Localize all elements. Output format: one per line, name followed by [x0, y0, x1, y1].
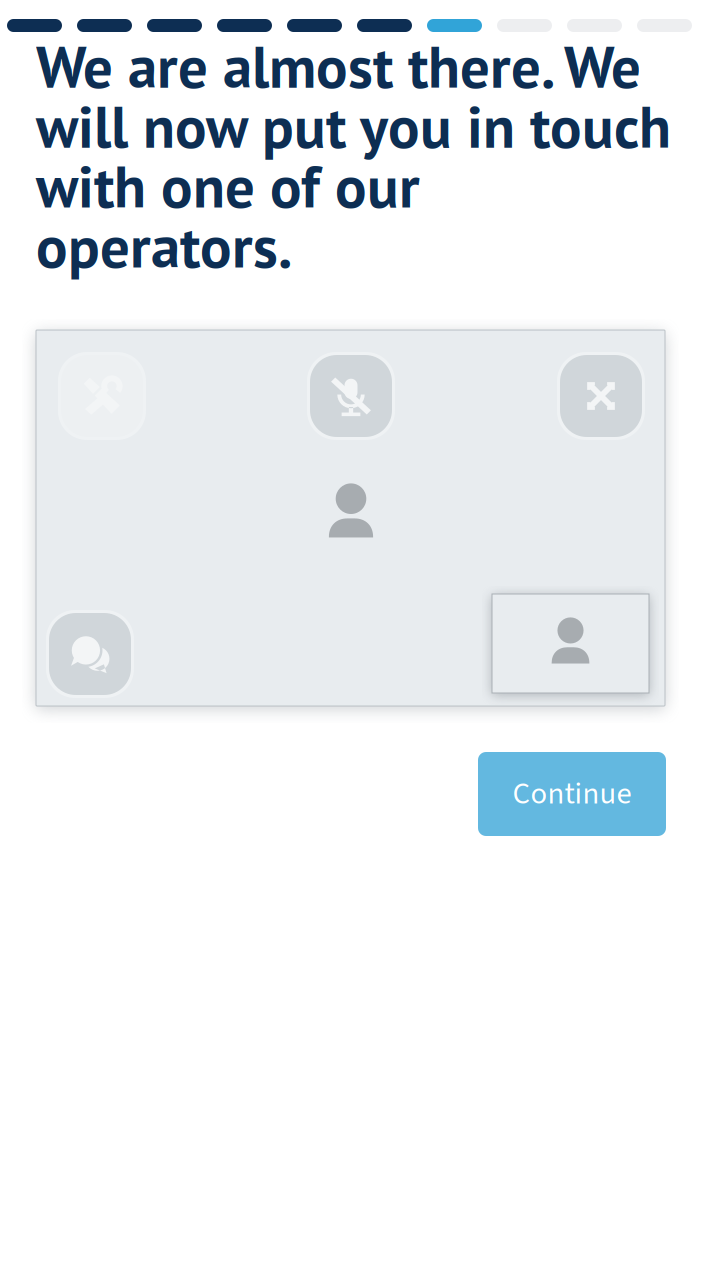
staticText: Continue	[512, 772, 631, 816]
button[interactable]: Mute microphone	[307, 352, 395, 440]
button[interactable]: Enter full screen	[557, 352, 645, 440]
staticText: We are almost there. We will now put you…	[36, 28, 671, 284]
button[interactable]: Open chat	[46, 610, 134, 698]
button[interactable]: Continue	[478, 752, 666, 836]
